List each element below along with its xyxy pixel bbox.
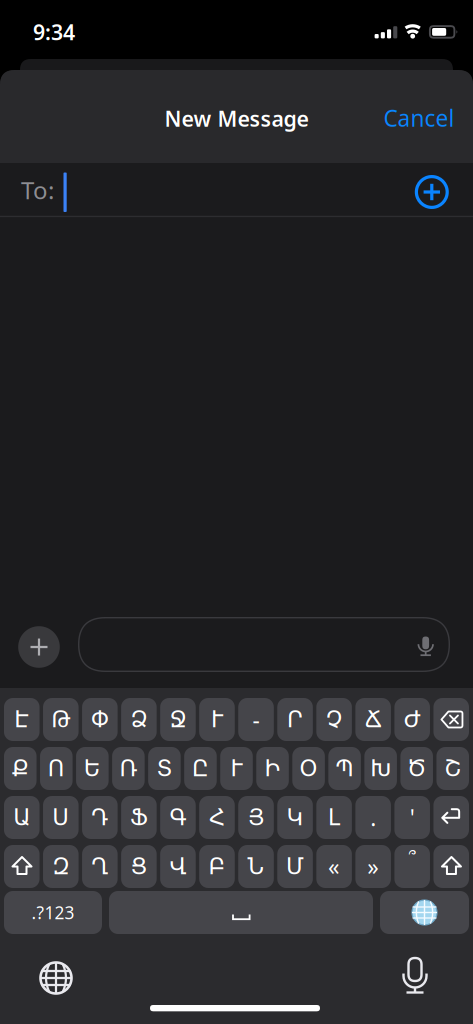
button[interactable]: Ո	[40, 747, 72, 790]
button[interactable]: Ւ	[199, 698, 235, 741]
button[interactable]: Ծ	[400, 747, 433, 790]
staticText: Ծ	[407, 756, 427, 781]
button[interactable]: Թ	[43, 698, 78, 741]
button[interactable]: Ջ	[160, 698, 196, 741]
staticText: Շ	[444, 756, 461, 781]
button[interactable]: Մ	[277, 845, 313, 888]
staticText: Կ	[287, 805, 304, 830]
staticText: Ա	[13, 805, 30, 830]
button[interactable]: Shift	[4, 845, 39, 888]
staticText: Յ	[248, 805, 264, 830]
staticText: Cancel	[383, 103, 454, 133]
staticText: Ճ	[365, 707, 382, 732]
staticText: Օ	[300, 756, 318, 781]
button[interactable]: Delete	[433, 698, 469, 741]
staticText: .?123	[31, 901, 74, 924]
button[interactable]: Next keyboard	[34, 956, 78, 1000]
button[interactable]: Լ	[316, 796, 352, 839]
button[interactable]: Ց	[121, 845, 157, 888]
button[interactable]: Dictation	[393, 955, 437, 999]
staticText: «	[328, 851, 340, 881]
button[interactable]: Դ	[82, 796, 118, 839]
button[interactable]: »	[355, 845, 391, 888]
button[interactable]: Ր	[277, 698, 313, 741]
button[interactable]: Է	[4, 698, 39, 741]
button[interactable]: Բ	[199, 845, 235, 888]
staticText: Ջ	[169, 707, 186, 732]
staticText: .	[370, 802, 376, 832]
button[interactable]: Զ	[43, 845, 78, 888]
button[interactable]: '	[394, 796, 430, 839]
button[interactable]: Փ	[82, 698, 118, 741]
button[interactable]: Օ	[292, 747, 325, 790]
button[interactable]: Ը	[184, 747, 217, 790]
staticText: Ղ	[91, 854, 108, 879]
staticText: Ի	[264, 756, 280, 781]
staticText: Ն	[247, 854, 264, 879]
staticText: Ը	[192, 756, 209, 781]
staticText: Խ	[370, 756, 391, 781]
button[interactable]: ՞	[394, 845, 430, 888]
button[interactable]: Գ	[160, 796, 196, 839]
button[interactable]: Հ	[199, 796, 235, 839]
button[interactable]: Ժ	[394, 698, 430, 741]
staticText: Ց	[130, 854, 147, 879]
staticText: Ժ	[404, 707, 421, 732]
staticText: Վ	[169, 854, 186, 879]
button[interactable]: Apps	[17, 625, 60, 668]
staticText: Հ	[209, 805, 225, 830]
staticText: Ե	[84, 756, 101, 781]
staticText: Ր	[287, 707, 303, 732]
button[interactable]: .?123	[4, 891, 102, 934]
button[interactable]: Տ	[148, 747, 181, 790]
button[interactable]: Ի	[256, 747, 289, 790]
staticText: Ռ	[119, 756, 137, 781]
button[interactable]: «	[316, 845, 352, 888]
button[interactable]: Խ	[364, 747, 397, 790]
button[interactable]: Ճ	[355, 698, 391, 741]
button[interactable]: .	[355, 796, 391, 839]
button[interactable]: Dictate	[411, 631, 441, 661]
staticText: Ս	[52, 805, 69, 830]
staticText: »	[367, 851, 379, 881]
staticText: Թ	[51, 707, 70, 732]
button[interactable]: Ա	[4, 796, 39, 839]
button[interactable]: Կ	[277, 796, 313, 839]
staticText: Դ	[91, 805, 108, 830]
button[interactable]: Space	[109, 891, 373, 934]
staticText: Փ	[91, 707, 109, 732]
staticText: Տ	[156, 756, 172, 781]
staticText: 9:34	[33, 18, 75, 46]
button[interactable]: Պ	[328, 747, 361, 790]
button[interactable]: Ձ	[121, 698, 157, 741]
button[interactable]: Չ	[316, 698, 352, 741]
button[interactable]: Ւ	[220, 747, 253, 790]
button[interactable]: Ռ	[112, 747, 145, 790]
staticText: Ւ	[211, 707, 223, 732]
button[interactable]: Յ	[238, 796, 274, 839]
button[interactable]: Add Contact	[410, 170, 454, 214]
button[interactable]: Ղ	[82, 845, 118, 888]
button[interactable]: Shift	[433, 845, 469, 888]
button[interactable]: Return	[433, 796, 469, 839]
button[interactable]: Ն	[238, 845, 274, 888]
staticText: Գ	[169, 805, 186, 830]
button[interactable]: Cancel	[383, 103, 454, 133]
button[interactable]: Ֆ	[121, 796, 157, 839]
staticText: Ք	[12, 756, 29, 781]
button[interactable]: Next keyboard	[380, 891, 469, 934]
button[interactable]: Վ	[160, 845, 196, 888]
staticText: Զ	[52, 854, 69, 879]
button[interactable]: Ս	[43, 796, 78, 839]
staticText: To:	[21, 174, 54, 206]
button[interactable]: Ե	[76, 747, 109, 790]
button[interactable]: Շ	[436, 747, 469, 790]
button[interactable]: -	[238, 698, 274, 741]
staticText: Ֆ	[130, 805, 148, 830]
staticText: -	[252, 704, 259, 734]
button[interactable]: Ք	[4, 747, 36, 790]
staticText: Լ	[328, 805, 340, 830]
staticText: ՞	[409, 850, 416, 869]
staticText: Չ	[326, 707, 342, 732]
button[interactable]: Text Message	[78, 617, 450, 672]
